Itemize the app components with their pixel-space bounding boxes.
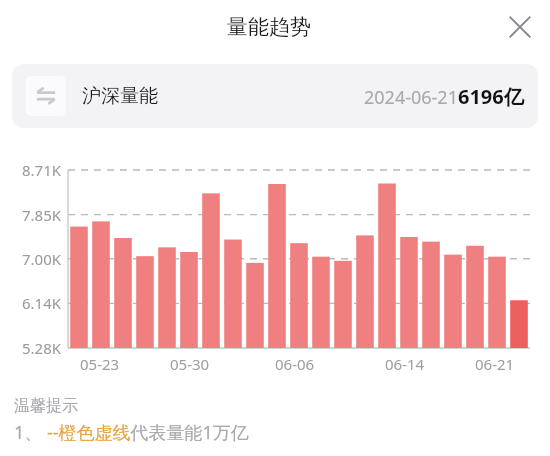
staticText: 1、 --橙色虚线代表量能1万亿: [14, 420, 249, 445]
staticText: 5.28K: [22, 338, 62, 358]
staticText: 06-14: [385, 354, 425, 374]
staticText: 7.85K: [22, 205, 62, 225]
staticText: 06-06: [275, 354, 315, 374]
staticText: 6.14K: [22, 293, 62, 313]
button[interactable]: Close: [498, 5, 542, 49]
staticText: 2024-06-216196亿: [364, 83, 524, 110]
staticText: 量能趋势: [227, 14, 311, 40]
staticText: 05-23: [80, 354, 120, 374]
staticText: 05-30: [170, 354, 210, 374]
staticText: 温馨提示: [14, 396, 78, 416]
staticText: 06-21: [475, 354, 515, 374]
staticText: 7.00K: [22, 249, 62, 269]
staticText: 8.71K: [22, 160, 62, 180]
staticText: 沪深量能: [82, 84, 158, 108]
button[interactable]: 沪深量能: [12, 64, 538, 128]
